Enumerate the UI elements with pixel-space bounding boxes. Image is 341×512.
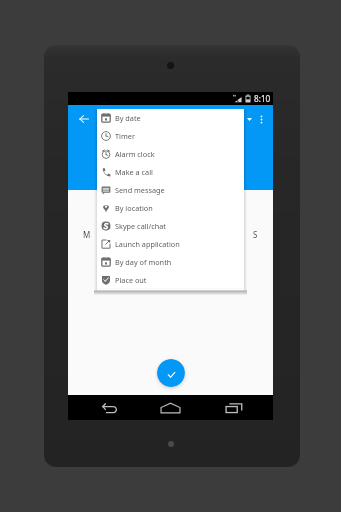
button[interactable]: Back bbox=[75, 110, 92, 127]
staticText: Launch application bbox=[115, 239, 180, 249]
staticText: M bbox=[83, 229, 91, 240]
button[interactable]: Launch application bbox=[97, 235, 244, 253]
staticText: By date bbox=[115, 113, 141, 123]
button[interactable]: Make a call bbox=[97, 163, 244, 181]
button[interactable]: T bbox=[157, 219, 185, 249]
button[interactable]: Place out bbox=[97, 271, 244, 288]
button[interactable]: Skype call/chat bbox=[97, 217, 244, 235]
staticText: Make a call bbox=[115, 167, 153, 177]
button[interactable]: W bbox=[129, 219, 157, 249]
staticText: By location bbox=[115, 203, 153, 213]
button[interactable]: Recent apps bbox=[211, 395, 256, 420]
button[interactable]: Alarm clock bbox=[97, 145, 244, 163]
staticText: Skype call/chat bbox=[115, 221, 166, 231]
button[interactable]: S bbox=[241, 219, 269, 249]
button[interactable]: By date bbox=[97, 109, 244, 127]
staticText: By day of month bbox=[115, 257, 172, 267]
button[interactable]: T bbox=[101, 219, 129, 249]
button[interactable]: More options bbox=[253, 111, 270, 128]
button[interactable]: Send message bbox=[97, 181, 244, 199]
button[interactable]: Done bbox=[157, 359, 185, 387]
button[interactable]: By day of month bbox=[97, 253, 244, 271]
staticText: S bbox=[253, 229, 258, 240]
button[interactable]: By location bbox=[97, 199, 244, 217]
button[interactable]: Timer bbox=[97, 127, 244, 145]
staticText: Send message bbox=[115, 185, 165, 195]
staticText: Timer bbox=[115, 131, 135, 141]
button[interactable]: Dropdown bbox=[243, 113, 255, 125]
staticText: Alarm clock bbox=[115, 149, 155, 159]
button[interactable]: M bbox=[72, 219, 101, 249]
button[interactable]: Home bbox=[148, 395, 193, 420]
staticText: Place out bbox=[115, 275, 147, 285]
button[interactable]: Back bbox=[86, 395, 131, 420]
staticText: 8:10 bbox=[254, 93, 271, 104]
